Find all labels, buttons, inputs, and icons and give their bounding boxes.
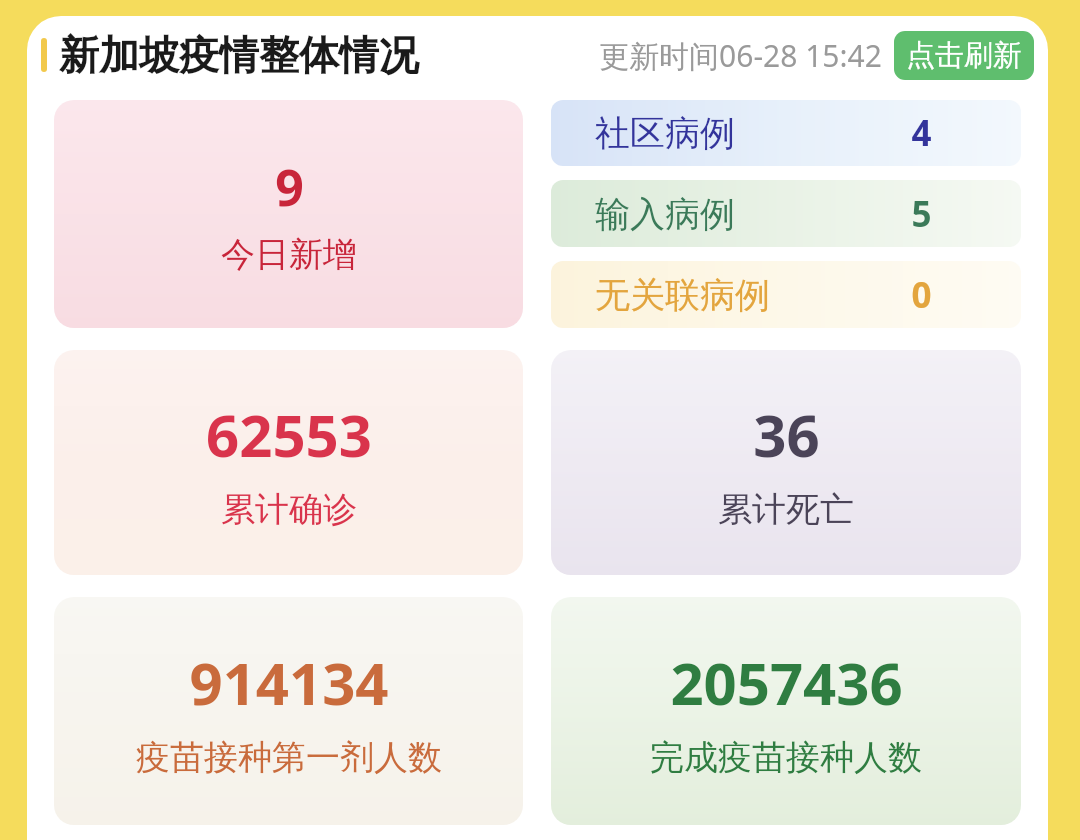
- staticText: 62553: [206, 395, 372, 474]
- staticText: 2057436: [670, 643, 903, 722]
- staticText: 36: [753, 395, 820, 474]
- staticText: 输入病例: [595, 192, 735, 236]
- staticText: 新加坡疫情整体情况: [59, 30, 419, 80]
- staticText: 5: [911, 190, 932, 238]
- staticText: 社区病例: [595, 111, 735, 155]
- staticText: 点击刷新: [906, 37, 1022, 74]
- button[interactable]: 62553: [54, 350, 523, 575]
- button[interactable]: 9: [54, 100, 523, 328]
- button[interactable]: 无关联病例: [551, 261, 1021, 328]
- staticText: 9: [275, 153, 304, 221]
- staticText: 4: [911, 109, 932, 157]
- staticText: 0: [911, 271, 932, 319]
- staticText: 今日新增: [221, 233, 357, 276]
- button[interactable]: 社区病例: [551, 100, 1021, 166]
- staticText: 疫苗接种第一剂人数: [136, 736, 442, 779]
- button[interactable]: 36: [551, 350, 1021, 575]
- button[interactable]: 点击刷新: [894, 31, 1034, 80]
- staticText: 无关联病例: [595, 273, 770, 317]
- button[interactable]: 914134: [54, 597, 523, 825]
- button[interactable]: 2057436: [551, 597, 1021, 825]
- staticText: 累计确诊: [221, 488, 357, 531]
- staticText: 累计死亡: [718, 488, 854, 531]
- staticText: 完成疫苗接种人数: [650, 736, 922, 779]
- button[interactable]: 输入病例: [551, 180, 1021, 247]
- staticText: 更新时间06-28 15:42: [599, 35, 882, 76]
- staticText: 914134: [189, 643, 389, 722]
